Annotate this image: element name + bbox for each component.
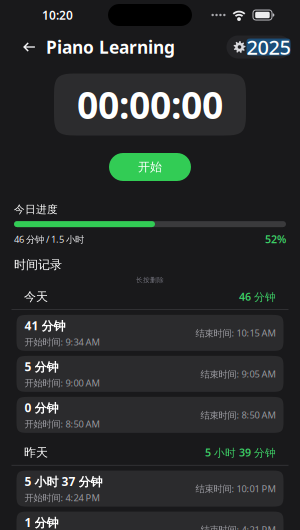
button[interactable]: 1 分钟 [16, 512, 283, 530]
staticText: 46 分钟 / 1.5 小时 [14, 233, 84, 245]
staticText: 开始时间: 9:34 AM [24, 336, 99, 348]
staticText: 5 小时 37 分钟 [24, 473, 102, 489]
staticText: 5 小时 39 分钟 [205, 445, 276, 459]
button[interactable]: 41 分钟 [16, 315, 283, 351]
staticText: 00:00:00 [77, 80, 223, 129]
staticText: 结束时间: 10:15 AM [195, 327, 275, 339]
staticText: 结束时间: 8:50 AM [200, 409, 275, 421]
staticText: 结束时间: 4:21 PM [200, 523, 275, 530]
staticText: 今日进度 [14, 203, 58, 216]
button[interactable]: Back [16, 34, 42, 60]
staticText: 时间记录 [14, 257, 62, 272]
staticText: 长按删除 [136, 276, 164, 284]
staticText: 开始时间: 4:24 PM [24, 491, 99, 504]
staticText: 开始时间: 8:50 AM [24, 418, 99, 430]
button[interactable]: 5 小时 37 分钟 [16, 471, 283, 507]
staticText: 5 分钟 [24, 359, 58, 375]
staticText: 46 分钟 [239, 290, 276, 304]
staticText: 41 分钟 [24, 318, 65, 334]
staticText: 结束时间: 9:05 AM [200, 368, 275, 380]
staticText: 10:20 [42, 7, 73, 23]
button[interactable]: 0 分钟 [16, 397, 283, 433]
staticText: 0 分钟 [24, 400, 58, 416]
staticText: Piano Learning [46, 35, 175, 58]
button[interactable]: 开始 [109, 153, 191, 181]
staticText: 开始 [138, 160, 162, 174]
staticText: 1 分钟 [24, 514, 58, 530]
button[interactable]: Year 2025 settings [226, 35, 291, 58]
staticText: 结束时间: 10:01 PM [195, 482, 275, 495]
staticText: 2025 [246, 34, 290, 60]
staticText: 52% [265, 232, 286, 246]
staticText: 开始时间: 9:00 AM [24, 377, 99, 389]
staticText: 今天 [24, 289, 48, 304]
button[interactable]: 5 分钟 [16, 356, 283, 392]
staticText: 昨天 [24, 445, 48, 460]
